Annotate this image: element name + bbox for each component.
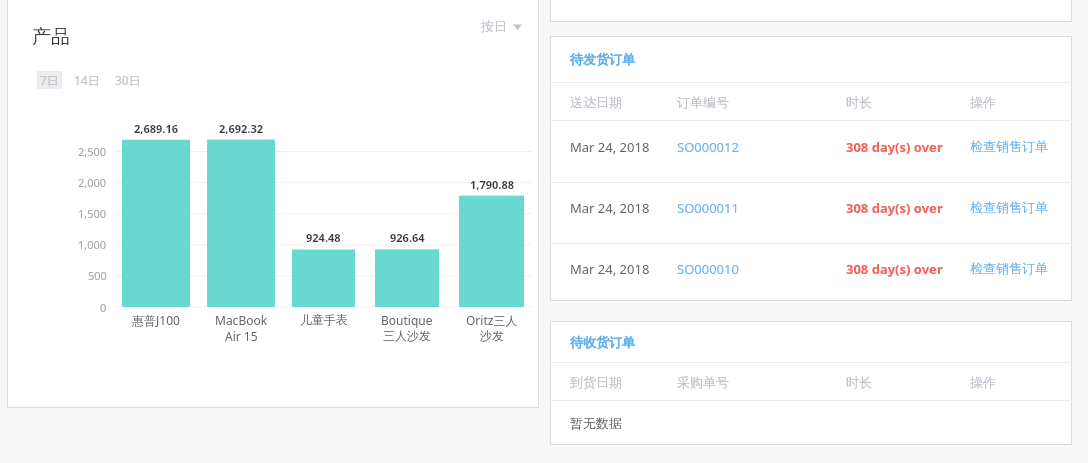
staticText: 2,689.16 [134, 121, 178, 136]
staticText: SO000011 [677, 199, 739, 217]
staticText: Mar 24, 2018 [570, 138, 650, 156]
staticText: Boutique [381, 312, 433, 328]
staticText: 926.64 [390, 230, 425, 245]
staticText: SO000010 [677, 260, 739, 278]
staticText: 送达日期 [570, 94, 622, 110]
staticText: 按日 [481, 18, 507, 34]
staticText: 2,500 [78, 144, 107, 159]
staticText: 308 day(s) over [846, 260, 943, 278]
staticText: 待收货订单 [570, 334, 635, 350]
button[interactable]: Mar 24, 2018 [550, 182, 1072, 243]
staticText: 2,000 [78, 175, 107, 190]
staticText: 308 day(s) over [846, 199, 943, 217]
staticText: 500 [88, 268, 107, 283]
button[interactable]: 按日 [477, 14, 526, 38]
staticText: 沙发 [480, 328, 504, 343]
button[interactable]: Mar 24, 2018 [550, 121, 1072, 182]
staticText: Mar 24, 2018 [570, 199, 650, 217]
staticText: 2,692.32 [219, 121, 263, 136]
staticText: 1,000 [78, 237, 107, 252]
staticText: 采购单号 [677, 374, 729, 390]
staticText: 7日 [40, 72, 59, 88]
staticText: 订单编号 [677, 94, 729, 110]
staticText: 14日 [74, 72, 100, 88]
staticText: 到货日期 [570, 374, 622, 390]
staticText: 1,790.88 [470, 177, 514, 192]
staticText: 30日 [115, 72, 141, 88]
button[interactable]: 14日 [71, 71, 103, 89]
staticText: Oritz三人 [466, 312, 518, 328]
staticText: 待发货订单 [570, 51, 635, 67]
staticText: 惠普J100 [132, 312, 180, 328]
staticText: MacBook [215, 312, 268, 328]
staticText: 0 [100, 300, 107, 315]
staticText: Air 15 [225, 328, 258, 344]
staticText: 操作 [970, 94, 996, 110]
staticText: SO000012 [677, 138, 739, 156]
staticText: 检查销售订单 [970, 199, 1048, 215]
staticText: 操作 [970, 374, 996, 390]
other: 按日 选择 [513, 23, 522, 30]
button[interactable]: 30日 [112, 71, 144, 89]
button[interactable]: 7日 [37, 71, 62, 89]
staticText: 时长 [846, 94, 872, 110]
staticText: 三人沙发 [383, 328, 431, 343]
staticText: 时长 [846, 374, 872, 390]
button[interactable]: Mar 24, 2018 [550, 243, 1072, 304]
staticText: Mar 24, 2018 [570, 260, 650, 278]
staticText: 暂无数据 [570, 415, 622, 431]
staticText: 308 day(s) over [846, 138, 943, 156]
staticText: 产品 [32, 25, 70, 49]
staticText: 儿童手表 [300, 312, 348, 327]
staticText: 1,500 [78, 206, 107, 221]
staticText: 检查销售订单 [970, 138, 1048, 154]
staticText: 检查销售订单 [970, 260, 1048, 276]
staticText: 924.48 [306, 230, 341, 245]
